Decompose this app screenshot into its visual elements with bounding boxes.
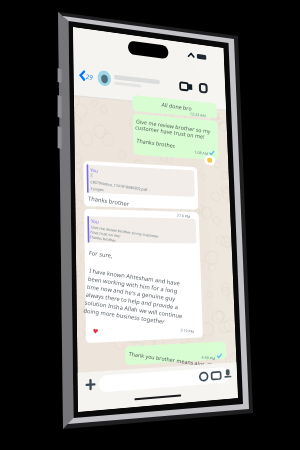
button[interactable]: WhatsApp chat shown on a tilted iPhone (0, 0, 300, 450)
